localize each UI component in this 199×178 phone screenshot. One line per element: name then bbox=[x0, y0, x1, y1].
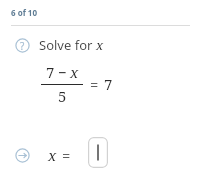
button[interactable]: Question bbox=[15, 38, 30, 53]
button[interactable]: Question bbox=[15, 36, 104, 54]
staticText: x bbox=[70, 62, 79, 82]
button[interactable]: Submit answer bbox=[15, 148, 30, 163]
staticText: − bbox=[58, 62, 67, 82]
staticText: 7 bbox=[46, 62, 55, 82]
staticText: ? bbox=[20, 39, 25, 53]
staticText: 5 bbox=[58, 86, 67, 106]
staticText: x bbox=[96, 36, 104, 54]
button[interactable]: Answer input bbox=[88, 137, 108, 168]
staticText: = bbox=[90, 74, 99, 94]
staticText: 7 bbox=[104, 74, 113, 94]
staticText: Solve for bbox=[39, 36, 96, 54]
staticText: = bbox=[62, 145, 71, 165]
staticText: 6 of 10 bbox=[11, 7, 37, 18]
staticText: x bbox=[48, 145, 57, 165]
